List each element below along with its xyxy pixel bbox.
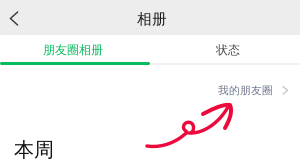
button[interactable]: 状态 [150, 35, 300, 65]
staticText: 朋友圈相册 [43, 43, 103, 57]
staticText: 状态 [216, 43, 240, 57]
button[interactable]: 朋友圈相册 [0, 35, 150, 65]
staticText: 我的朋友圈 [218, 84, 273, 97]
button[interactable]: 我的朋友圈 [218, 65, 300, 97]
button[interactable]: Back [0, 0, 31, 35]
staticText: 本周 [14, 137, 54, 162]
staticText: 相册 [137, 10, 167, 28]
